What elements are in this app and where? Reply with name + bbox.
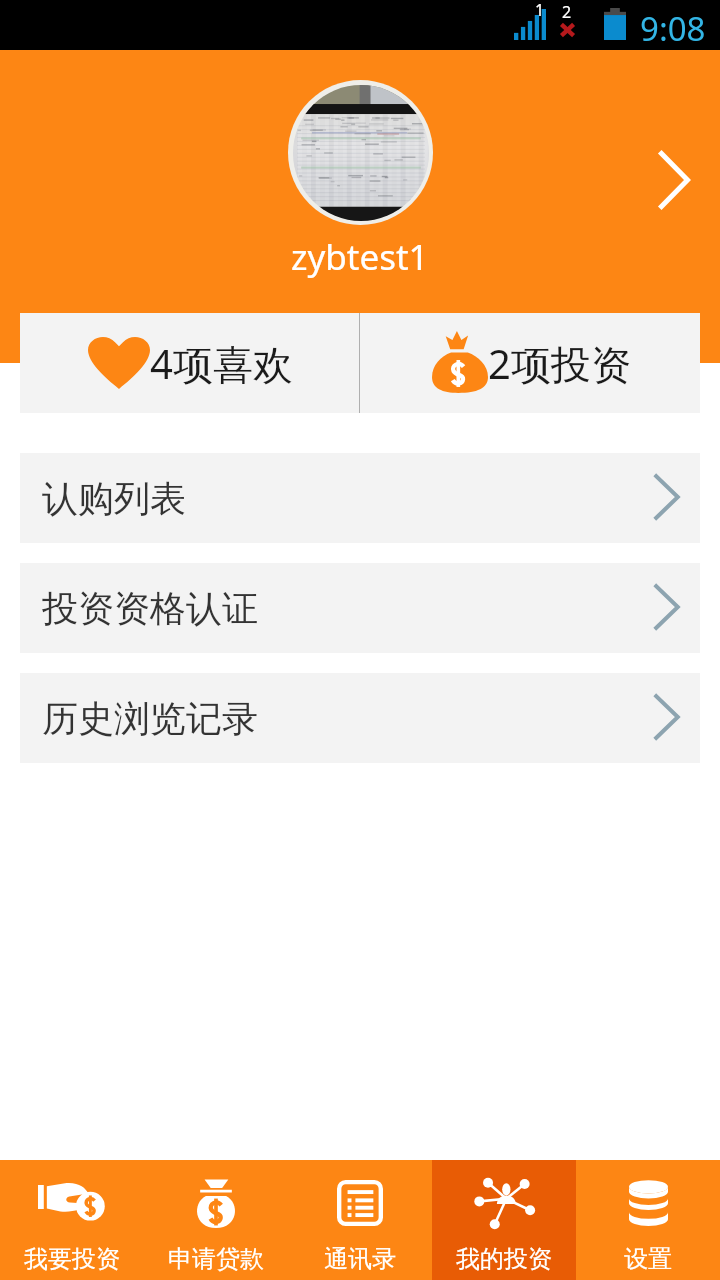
staticText: 投资资格认证 bbox=[42, 586, 258, 631]
staticText: 历史浏览记录 bbox=[42, 696, 258, 741]
staticText: 2项投资 bbox=[488, 336, 631, 391]
button[interactable]: 投资资格认证 bbox=[20, 563, 700, 653]
staticText: 我的投资 bbox=[456, 1244, 552, 1274]
button[interactable]: 2项投资 bbox=[360, 313, 700, 413]
staticText: 申请贷款 bbox=[168, 1244, 264, 1274]
button[interactable]: Contacts bbox=[288, 1160, 432, 1280]
staticText: 我要投资 bbox=[24, 1244, 120, 1274]
staticText: zybtest1 bbox=[291, 233, 429, 281]
button[interactable]: 历史浏览记录 bbox=[20, 673, 700, 763]
button[interactable]: My investments bbox=[432, 1160, 576, 1280]
staticText: 9:08 bbox=[640, 6, 706, 51]
staticText: 1 bbox=[535, 0, 545, 21]
button[interactable]: Open profile bbox=[659, 151, 690, 209]
staticText: 2 bbox=[562, 1, 572, 23]
button[interactable]: 4项喜欢 bbox=[20, 313, 359, 413]
staticText: 通讯录 bbox=[324, 1244, 396, 1274]
button[interactable]: Settings bbox=[576, 1160, 720, 1280]
staticText: 4项喜欢 bbox=[150, 336, 293, 391]
button[interactable]: Apply for loan bbox=[144, 1160, 288, 1280]
button[interactable]: I want to invest bbox=[0, 1160, 144, 1280]
staticText: 认购列表 bbox=[42, 476, 186, 521]
button[interactable]: 认购列表 bbox=[20, 453, 700, 543]
staticText: 设置 bbox=[624, 1244, 672, 1274]
